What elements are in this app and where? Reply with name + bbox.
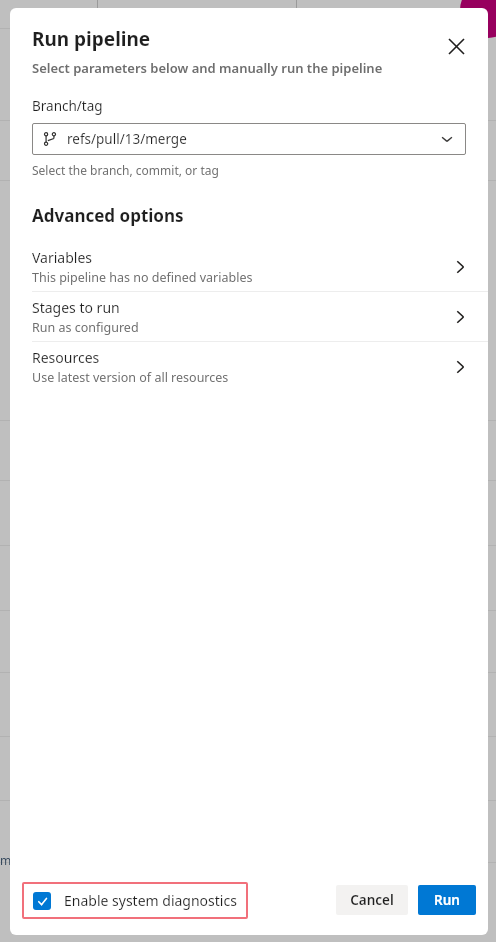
button[interactable]: refs/pull/13/merge xyxy=(32,123,466,155)
staticText: m. xyxy=(0,852,15,868)
button[interactable]: Close xyxy=(440,30,472,62)
button[interactable]: Resources xyxy=(10,342,488,391)
button[interactable]: Enable system diagnostics xyxy=(22,882,248,919)
button[interactable]: Variables xyxy=(10,242,488,291)
staticText: Variables xyxy=(32,248,93,267)
button[interactable]: Run xyxy=(418,885,476,915)
staticText: Run pipeline xyxy=(32,26,151,52)
staticText: Enable system diagnostics xyxy=(64,891,237,910)
staticText: Cancel xyxy=(350,891,394,909)
staticText: Select the branch, commit, or tag xyxy=(32,162,219,178)
staticText: refs/pull/13/merge xyxy=(67,130,187,148)
staticText: This pipeline has no defined variables xyxy=(32,269,253,286)
staticText: Branch/tag xyxy=(32,97,103,115)
staticText: Use latest version of all resources xyxy=(32,369,229,386)
staticText: Select parameters below and manually run… xyxy=(32,59,383,77)
staticText: Run as configured xyxy=(32,319,139,336)
button[interactable]: Stages to run xyxy=(10,292,488,341)
staticText: Advanced options xyxy=(32,204,184,227)
button[interactable]: Cancel xyxy=(336,885,408,915)
staticText: Run xyxy=(434,891,460,909)
staticText: Stages to run xyxy=(32,298,120,317)
staticText: Resources xyxy=(32,348,100,367)
